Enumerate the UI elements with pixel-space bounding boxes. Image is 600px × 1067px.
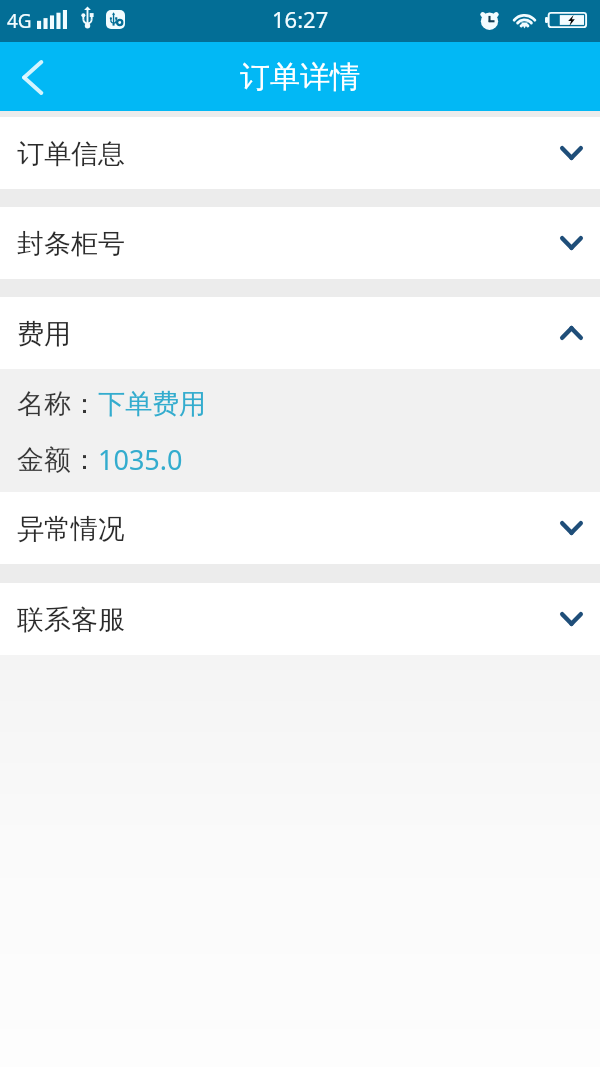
- staticText: 16:27: [272, 4, 329, 34]
- button[interactable]: Back: [0, 45, 64, 109]
- staticText: 联系客服: [17, 603, 125, 637]
- button[interactable]: 异常情况: [0, 492, 600, 564]
- staticText: 金额：: [17, 443, 98, 477]
- button[interactable]: 联系客服: [0, 583, 600, 655]
- staticText: 下单费用: [98, 387, 206, 421]
- staticText: 4G: [7, 8, 32, 34]
- button[interactable]: 订单信息: [0, 117, 600, 189]
- staticText: 订单信息: [17, 137, 125, 171]
- staticText: 名称：: [17, 387, 98, 421]
- staticText: 费用: [17, 317, 71, 351]
- staticText: 异常情况: [17, 512, 125, 546]
- staticText: 封条柜号: [17, 227, 125, 261]
- staticText: 1035.0: [98, 441, 183, 478]
- button[interactable]: 费用: [0, 297, 600, 369]
- staticText: 订单详情: [240, 58, 360, 96]
- button[interactable]: 封条柜号: [0, 207, 600, 279]
